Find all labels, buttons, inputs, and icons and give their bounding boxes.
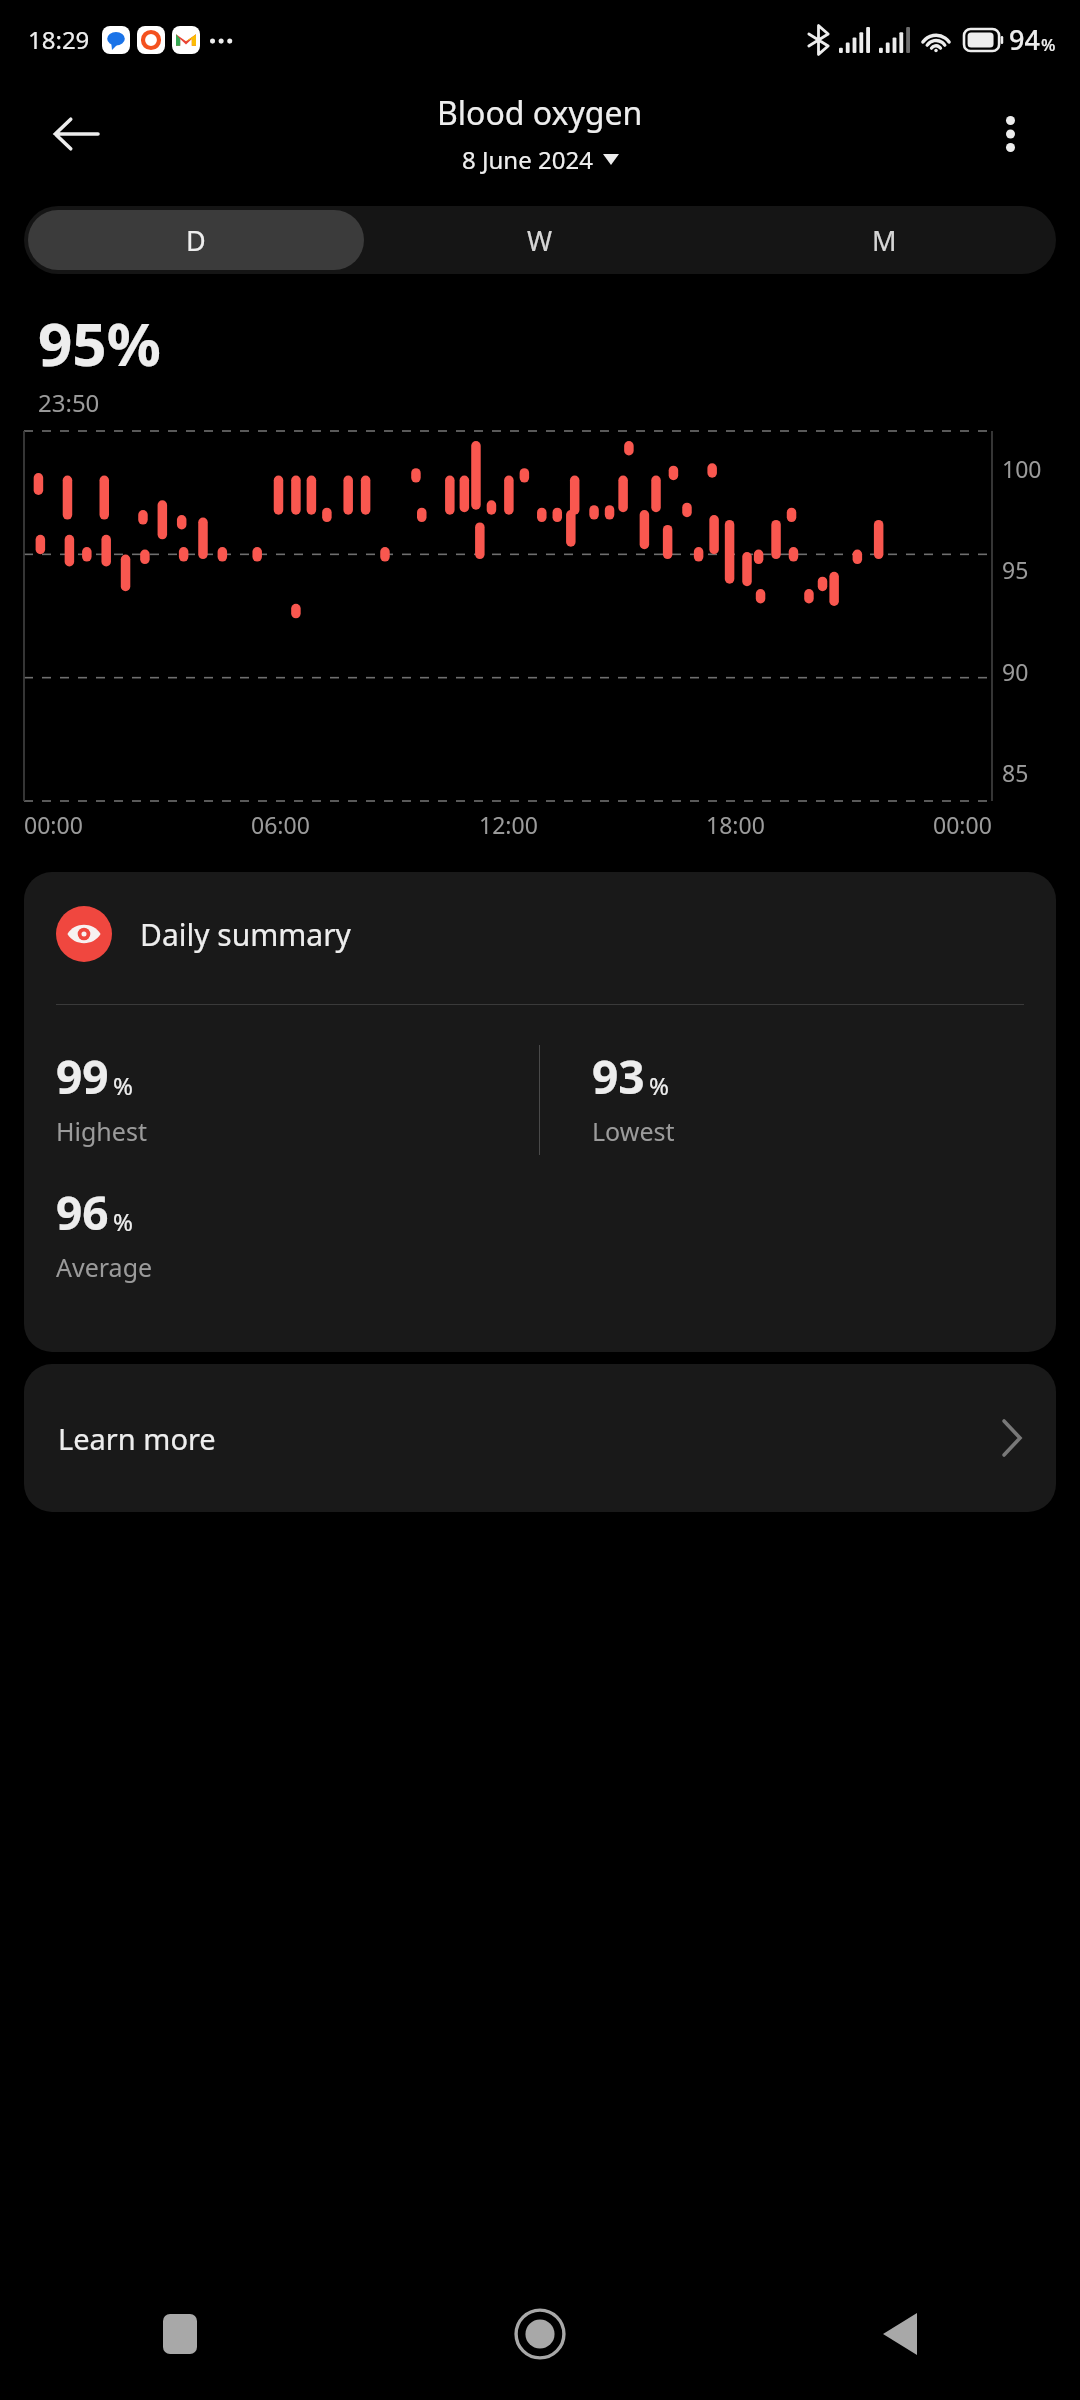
button[interactable]: Back [720, 2268, 1080, 2400]
staticText: 18:00 [706, 809, 765, 840]
button[interactable]: D [28, 210, 364, 270]
staticText: 06:00 [251, 809, 310, 840]
staticText: W [527, 222, 553, 259]
staticText: 100 [1002, 453, 1042, 484]
staticText: 99 [56, 1045, 109, 1108]
staticText: 85 [1002, 757, 1029, 788]
staticText: % [1041, 33, 1056, 56]
staticText: 23:50 [38, 386, 100, 419]
staticText: D [186, 222, 206, 259]
staticText: 12:00 [479, 809, 538, 840]
button[interactable]: Back [38, 96, 114, 172]
staticText: Average [56, 1250, 153, 1284]
staticText: 95% [38, 302, 161, 384]
button[interactable]: M [716, 210, 1052, 270]
button[interactable]: 8 June 2024 [456, 141, 625, 178]
staticText: 96 [56, 1181, 109, 1244]
button[interactable]: Recent apps [0, 2268, 360, 2400]
button[interactable]: Daily summary [24, 872, 1056, 1352]
staticText: 8 June 2024 [462, 143, 593, 176]
button[interactable]: Home [360, 2268, 720, 2400]
staticText: 95 [1002, 554, 1029, 585]
staticText: % [113, 1069, 133, 1102]
staticText: 18:29 [28, 23, 90, 56]
staticText: Lowest [592, 1114, 675, 1148]
staticText: M [872, 222, 897, 259]
staticText: Blood oxygen [437, 91, 643, 135]
button[interactable]: W [372, 210, 708, 270]
staticText: % [113, 1205, 133, 1238]
staticText: Highest [56, 1114, 147, 1148]
staticText: Daily summary [140, 914, 351, 955]
staticText: 90 [1002, 656, 1029, 687]
staticText: 00:00 [24, 809, 83, 840]
button[interactable]: More options [974, 98, 1046, 170]
staticText: 94 [1009, 21, 1040, 58]
staticText: 00:00 [933, 809, 992, 840]
staticText: % [649, 1069, 669, 1102]
staticText: 93 [592, 1045, 645, 1108]
button[interactable]: Learn more [24, 1364, 1056, 1512]
staticText: Learn more [58, 1419, 216, 1458]
